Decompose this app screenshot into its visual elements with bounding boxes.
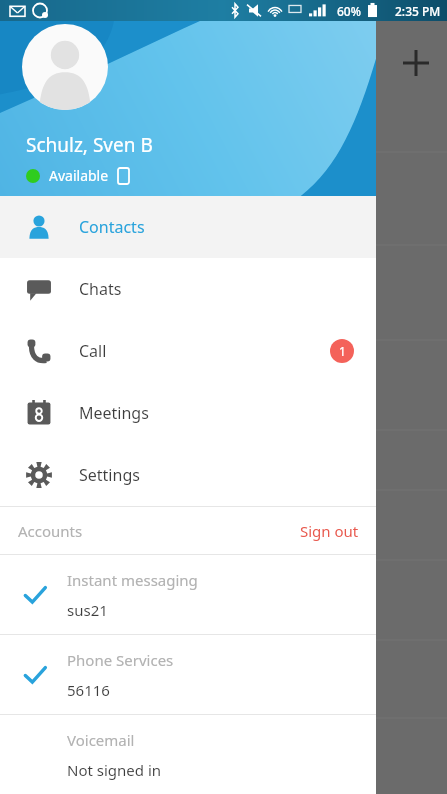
staticText: Meetings — [79, 402, 149, 424]
button[interactable]: Sign out — [300, 521, 359, 541]
staticText: 1 — [339, 343, 346, 359]
button[interactable]: Add — [397, 44, 435, 82]
button[interactable]: Settings — [0, 444, 376, 506]
staticText: Accounts — [18, 521, 83, 541]
staticText: Voicemail — [67, 730, 135, 750]
staticText: 60% — [337, 3, 361, 19]
button[interactable]: Call — [0, 320, 376, 382]
button[interactable]: Voicemail — [0, 715, 376, 794]
staticText: Available — [49, 166, 109, 185]
button[interactable]: Meetings — [0, 382, 376, 444]
staticText: Schulz, Sven B — [26, 132, 153, 158]
staticText: Call — [79, 340, 107, 362]
staticText: Not signed in — [67, 760, 162, 780]
staticText: 56116 — [67, 680, 110, 700]
button[interactable]: Profile photo — [22, 24, 108, 110]
button[interactable]: Instant messaging — [0, 555, 376, 634]
staticText: sus21 — [67, 600, 108, 620]
staticText: Settings — [79, 464, 140, 486]
button[interactable]: Available — [26, 166, 129, 185]
staticText: Phone Services — [67, 650, 174, 670]
staticText: Instant messaging — [67, 570, 198, 590]
button[interactable]: Phone Services — [0, 635, 376, 714]
button[interactable]: Contacts — [0, 196, 376, 258]
staticText: Sign out — [300, 521, 359, 541]
button[interactable]: Chats — [0, 258, 376, 320]
staticText: Contacts — [79, 216, 145, 238]
staticText: Chats — [79, 278, 122, 300]
staticText: 2:35 PM — [395, 3, 441, 19]
